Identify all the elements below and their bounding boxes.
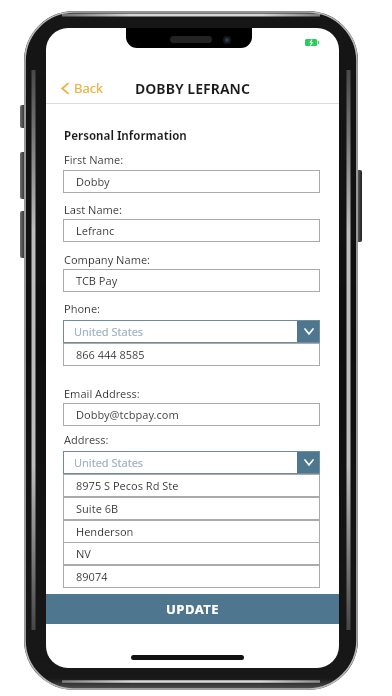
button[interactable]: Back [61, 79, 103, 97]
button[interactable]: 89074 [63, 565, 320, 588]
staticText: Phone: [64, 301, 101, 316]
staticText: TCB Pay [76, 273, 118, 288]
staticText: United States [74, 324, 144, 339]
staticText: Lefranc [76, 223, 115, 238]
staticText: Suite 6B [76, 501, 119, 516]
staticText: Last Name: [64, 202, 123, 217]
button[interactable]: Henderson [63, 520, 320, 543]
staticText: Henderson [76, 524, 134, 539]
staticText: First Name: [64, 152, 124, 167]
staticText: NV [76, 546, 91, 561]
staticText: 8975 S Pecos Rd Ste [76, 478, 179, 493]
staticText: Address: [64, 432, 109, 447]
staticText: Back [74, 79, 103, 97]
button[interactable]: NV [63, 542, 320, 565]
button[interactable]: Suite 6B [63, 497, 320, 520]
staticText: Email Address: [64, 386, 140, 401]
staticText: Company Name: [64, 252, 151, 267]
staticText: UPDATE [166, 600, 220, 618]
button[interactable]: Dobby@tcbpay.com [63, 403, 320, 426]
button[interactable]: Dobby [63, 170, 320, 193]
staticText: Dobby [76, 174, 110, 189]
button[interactable]: TCB Pay [63, 269, 320, 292]
staticText: Personal Information [64, 128, 187, 144]
button[interactable]: 866 444 8585 [63, 343, 320, 366]
staticText: Dobby@tcbpay.com [76, 407, 179, 422]
staticText: 866 444 8585 [76, 347, 145, 362]
button[interactable]: 8975 S Pecos Rd Ste [63, 474, 320, 497]
button[interactable]: United States [63, 451, 320, 474]
staticText: United States [74, 455, 144, 470]
staticText: 89074 [76, 569, 108, 584]
button[interactable]: Lefranc [63, 219, 320, 242]
staticText: DOBBY LEFRANC [135, 79, 250, 98]
button[interactable]: UPDATE [46, 594, 339, 624]
button[interactable]: United States [63, 320, 320, 343]
